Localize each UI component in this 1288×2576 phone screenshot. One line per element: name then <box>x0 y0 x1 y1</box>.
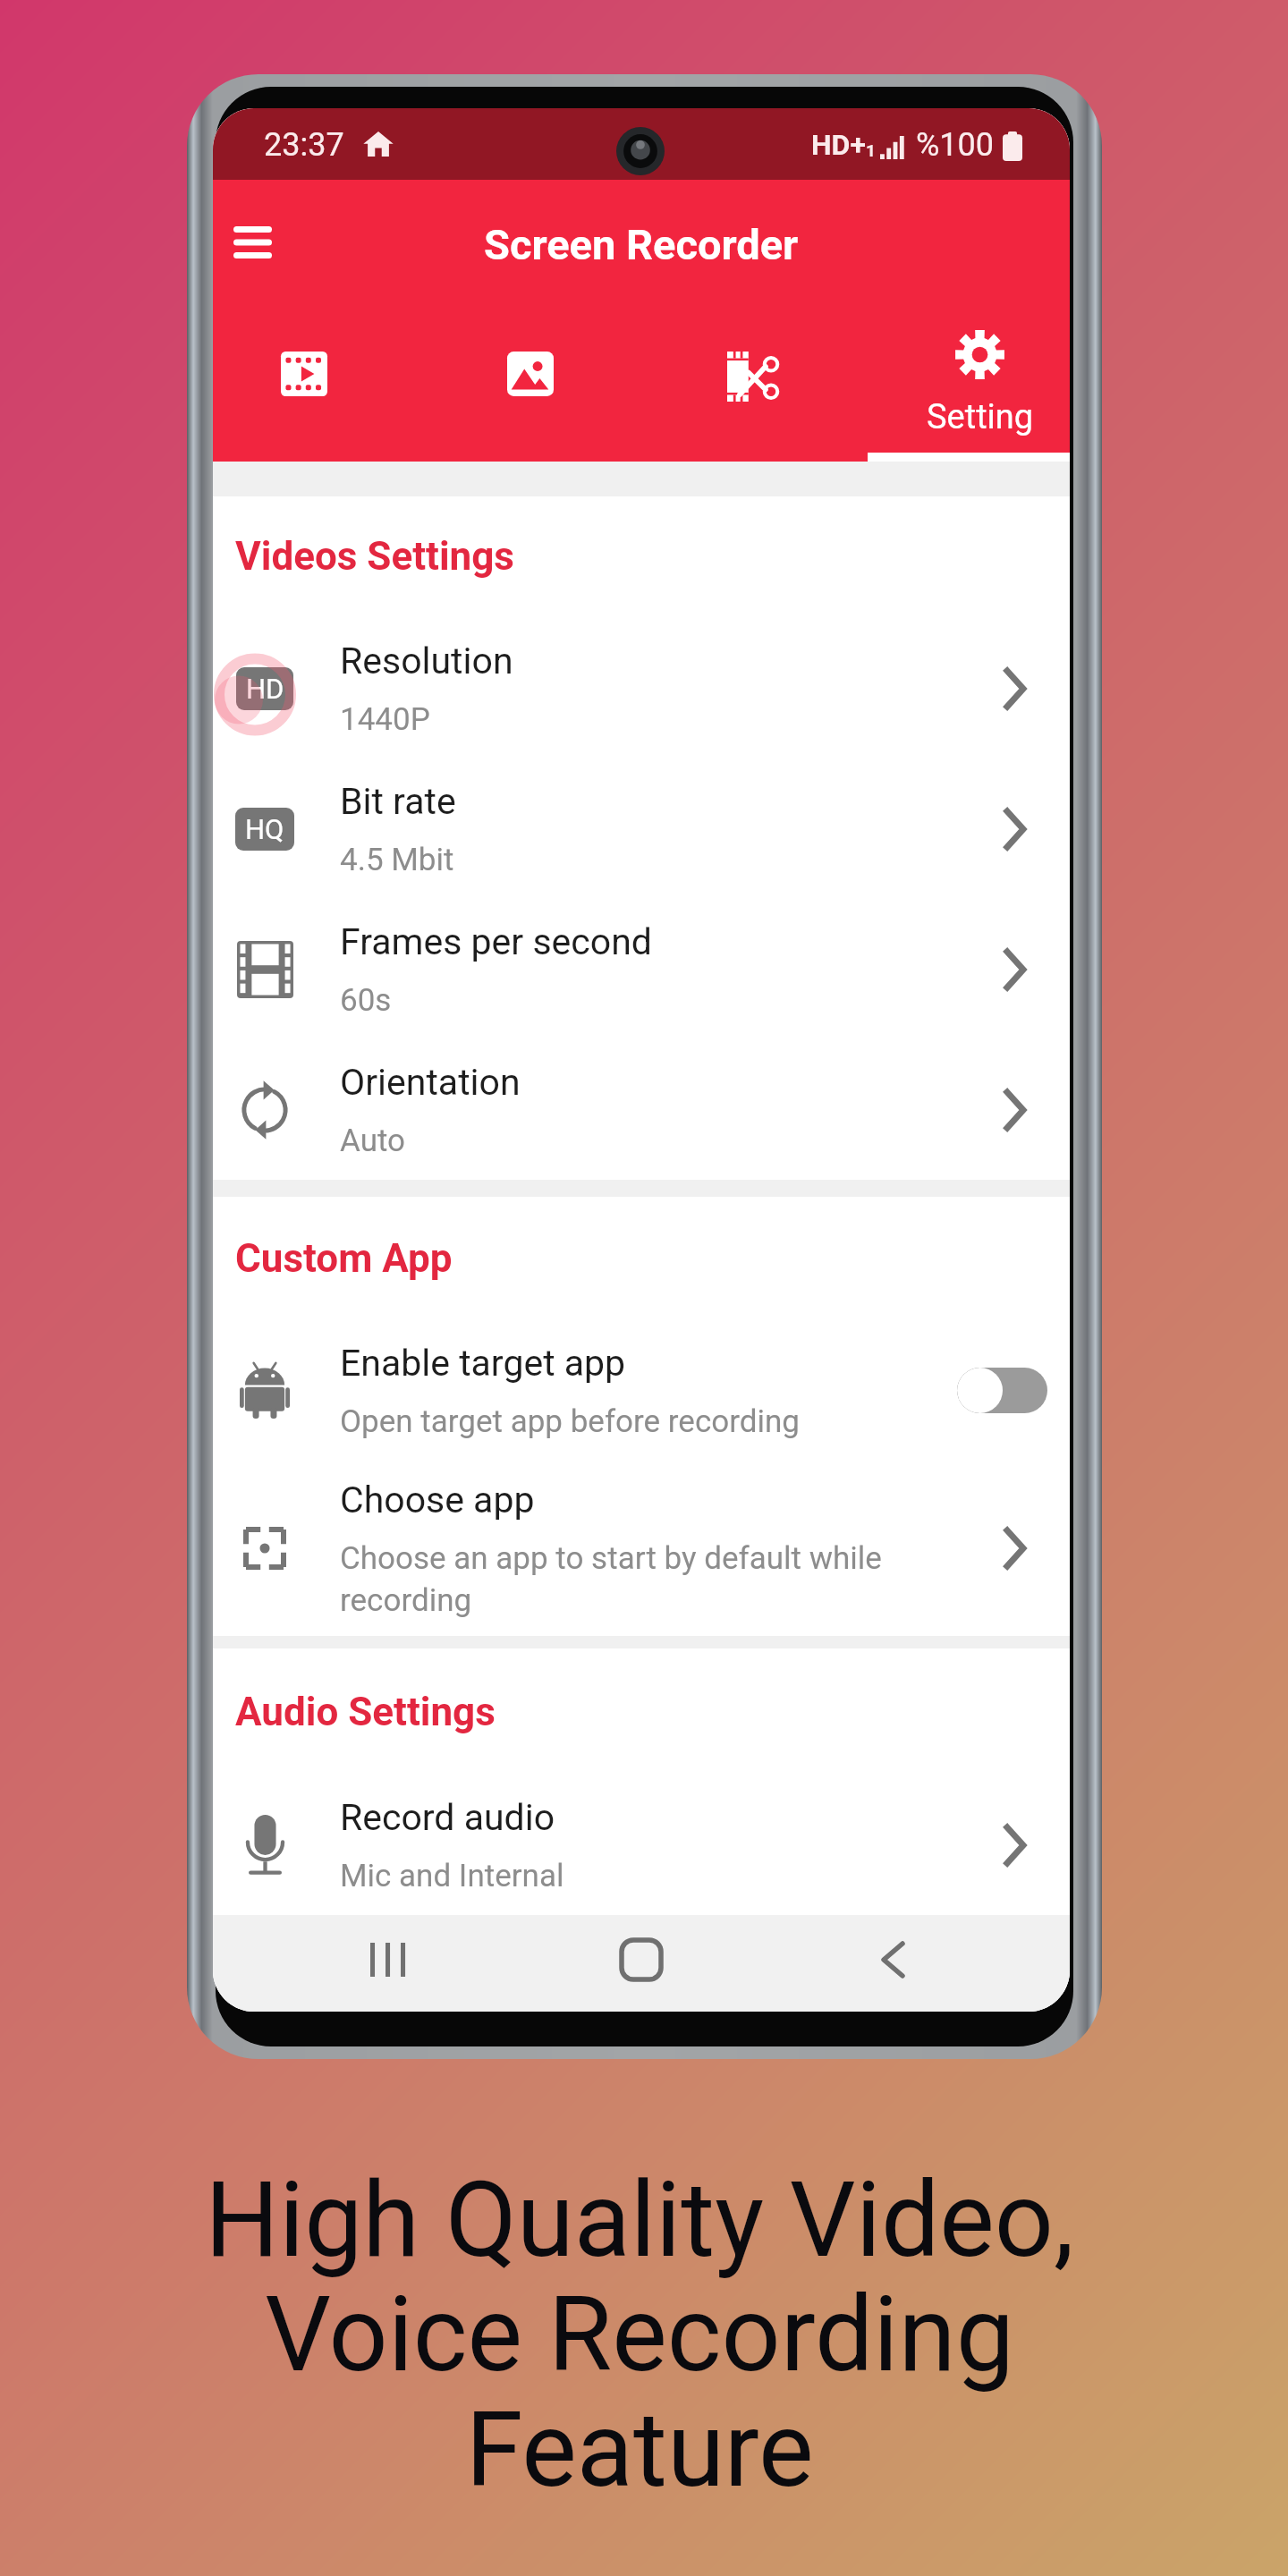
staticText: Choose an app to start by default while … <box>340 1540 882 1619</box>
staticText: Open target app before recording <box>340 1403 800 1440</box>
button[interactable]: Recent apps <box>344 1919 434 2008</box>
button[interactable]: Orientation <box>213 1039 1070 1180</box>
staticText: Videos Settings <box>235 533 514 580</box>
staticText: 60s <box>340 982 392 1019</box>
button[interactable]: Enable target app <box>213 1320 1070 1461</box>
button[interactable]: Home <box>597 1919 686 2008</box>
staticText: Audio Settings <box>235 1689 496 1735</box>
button[interactable]: HD <box>213 618 1070 758</box>
button[interactable]: Open navigation menu <box>218 208 286 276</box>
button[interactable]: Enable target app toggle <box>957 1368 1047 1413</box>
staticText: %100 <box>916 126 995 164</box>
button[interactable]: Editor <box>641 278 865 462</box>
button[interactable]: Images <box>419 278 642 462</box>
staticText: Resolution <box>340 640 513 682</box>
staticText: HD <box>246 673 284 705</box>
staticText: Mic and Internal <box>340 1858 564 1894</box>
staticText: Record audio <box>340 1796 555 1839</box>
staticText: 1 <box>866 140 876 160</box>
staticText: Setting <box>927 397 1034 437</box>
staticText: HD+ <box>811 128 866 162</box>
staticText: High Quality Video, Voice Recording Feat… <box>0 2159 1284 2511</box>
staticText: HQ <box>245 813 284 845</box>
button[interactable]: HQ <box>213 758 1070 899</box>
button[interactable]: Frames per second <box>213 899 1070 1039</box>
staticText: Screen Recorder <box>484 220 799 269</box>
staticText: Frames per second <box>340 920 652 963</box>
button[interactable]: Recordings <box>213 278 416 462</box>
staticText: 1440P <box>340 701 430 738</box>
staticText: Choose app <box>340 1479 535 1521</box>
button[interactable]: Back <box>848 1919 937 2008</box>
button[interactable]: Record audio <box>213 1775 1070 1915</box>
staticText: 4.5 Mbit <box>340 842 454 878</box>
staticText: 23:37 <box>264 126 344 164</box>
button[interactable]: Setting <box>868 278 1070 462</box>
staticText: Auto <box>340 1123 406 1159</box>
staticText: Bit rate <box>340 780 456 823</box>
staticText: Custom App <box>235 1235 453 1282</box>
staticText: Orientation <box>340 1061 521 1104</box>
staticText: Enable target app <box>340 1342 626 1385</box>
button[interactable]: Choose app <box>213 1461 1070 1636</box>
